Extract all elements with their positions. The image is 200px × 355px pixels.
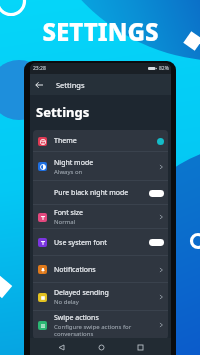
staticText: Font size xyxy=(54,208,83,218)
staticText: Settings xyxy=(36,103,90,121)
button[interactable]: Home xyxy=(93,339,109,355)
button[interactable]: Pure black night mode xyxy=(33,181,168,205)
staticText: SETTINGS xyxy=(42,15,159,48)
staticText: Use system font xyxy=(54,238,107,248)
staticText: No delay xyxy=(54,298,79,306)
button[interactable]: Font size xyxy=(33,205,168,229)
staticText: Settings xyxy=(56,80,85,90)
staticText: Theme xyxy=(54,136,77,146)
staticText: Delayed sending xyxy=(54,288,109,298)
staticText: 82% xyxy=(159,65,169,72)
staticText: Night mode xyxy=(54,158,94,168)
staticText: Always on xyxy=(54,168,83,176)
staticText: Normal xyxy=(54,218,76,226)
button[interactable]: Notifications xyxy=(33,256,168,283)
staticText: Configure swipe actions for conversation… xyxy=(54,323,155,338)
button[interactable]: Use system font xyxy=(33,229,168,256)
button[interactable]: Recents xyxy=(132,339,148,355)
button[interactable]: Back xyxy=(53,339,69,355)
button[interactable]: Back xyxy=(30,74,47,95)
staticText: Swipe actions xyxy=(54,313,99,323)
staticText: Notifications xyxy=(54,265,96,275)
button[interactable]: Delayed sending xyxy=(33,283,168,311)
button[interactable]: Night mode xyxy=(33,152,168,181)
staticText: Pure black night mode xyxy=(54,188,129,198)
button[interactable]: Swipe actions xyxy=(33,311,168,339)
button[interactable]: Theme xyxy=(33,130,168,152)
staticText: 23:28 xyxy=(33,65,46,72)
